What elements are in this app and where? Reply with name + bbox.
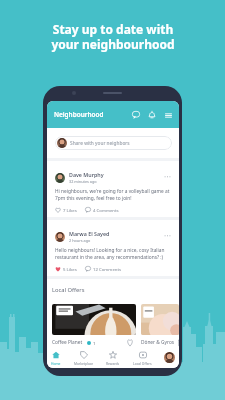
staticText: 5 Likes bbox=[63, 266, 77, 272]
button[interactable]: Menu bbox=[162, 109, 174, 121]
staticText: 7 Likes bbox=[63, 207, 77, 213]
button[interactable]: Notifications bbox=[146, 109, 158, 121]
staticText: Stay up to date with your neighbourhood bbox=[51, 21, 175, 53]
staticText: Neighbourhood bbox=[54, 110, 104, 119]
staticText: Dave Murphy bbox=[69, 171, 104, 178]
staticText: 2 hours ago bbox=[69, 238, 91, 243]
button[interactable]: Profile bbox=[164, 352, 175, 363]
button[interactable]: Rewards bbox=[105, 351, 121, 365]
button[interactable]: More options bbox=[163, 173, 172, 182]
staticText: Hello neighbours! Looking for a nice, co… bbox=[55, 247, 165, 261]
button[interactable]: Döner & Gyros bbox=[141, 304, 179, 347]
staticText: Coffee Planet bbox=[52, 339, 83, 346]
staticText: 4 Comments bbox=[93, 207, 119, 213]
staticText: Local Offers bbox=[133, 361, 152, 365]
staticText: Marwa El Sayed bbox=[69, 230, 110, 237]
staticText: Home bbox=[51, 361, 61, 365]
button[interactable]: 4 Comments bbox=[85, 207, 119, 213]
staticText: 1 bbox=[93, 340, 96, 346]
button[interactable]: 7 Likes bbox=[55, 207, 77, 213]
button[interactable]: Coffee Planet bbox=[52, 304, 136, 347]
button[interactable]: 5 Likes bbox=[55, 266, 77, 272]
button[interactable]: Messages bbox=[130, 109, 142, 121]
staticText: 12 Comments bbox=[93, 266, 122, 272]
button[interactable]: Home bbox=[50, 351, 62, 365]
staticText: Local Offers bbox=[52, 286, 85, 294]
button[interactable]: Marketplace bbox=[73, 351, 95, 365]
staticText: Rewards bbox=[106, 361, 120, 365]
button[interactable]: More options bbox=[163, 232, 172, 241]
staticText: Hi neighbours, we're going for a volleyb… bbox=[55, 188, 170, 202]
staticText: Marketplace bbox=[74, 361, 94, 365]
button[interactable]: Share with your neighbors bbox=[57, 136, 172, 150]
staticText: Share with your neighbors bbox=[70, 140, 130, 147]
button[interactable]: Local Offers bbox=[132, 351, 153, 365]
staticText: 32 minutes ago bbox=[69, 179, 97, 184]
button[interactable]: Favorite bbox=[127, 338, 133, 347]
staticText: Döner & Gyros bbox=[141, 339, 175, 346]
button[interactable]: 12 Comments bbox=[85, 266, 122, 272]
